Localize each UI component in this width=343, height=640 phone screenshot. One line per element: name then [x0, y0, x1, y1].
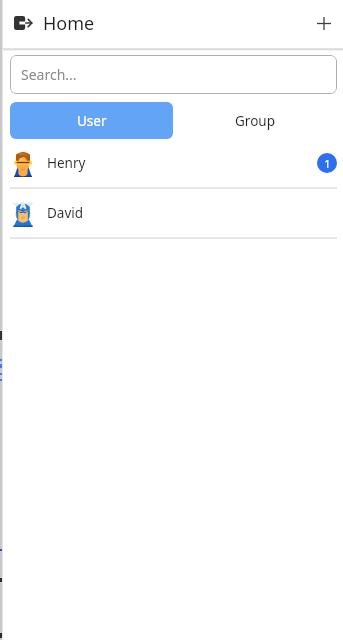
- button[interactable]: Logout: [7, 7, 39, 39]
- button[interactable]: Search...: [10, 55, 337, 94]
- staticText: Group: [235, 112, 275, 130]
- button[interactable]: User: [10, 102, 173, 139]
- staticText: Search...: [21, 65, 77, 84]
- staticText: David: [47, 204, 84, 222]
- button[interactable]: David: [3, 189, 343, 239]
- button[interactable]: Henry: [3, 139, 343, 189]
- button[interactable]: Add: [308, 7, 340, 39]
- staticText: User: [77, 112, 107, 130]
- staticText: 1: [324, 156, 331, 171]
- staticText: Henry: [47, 154, 86, 172]
- button[interactable]: Group: [173, 102, 337, 139]
- staticText: Home: [43, 11, 95, 36]
